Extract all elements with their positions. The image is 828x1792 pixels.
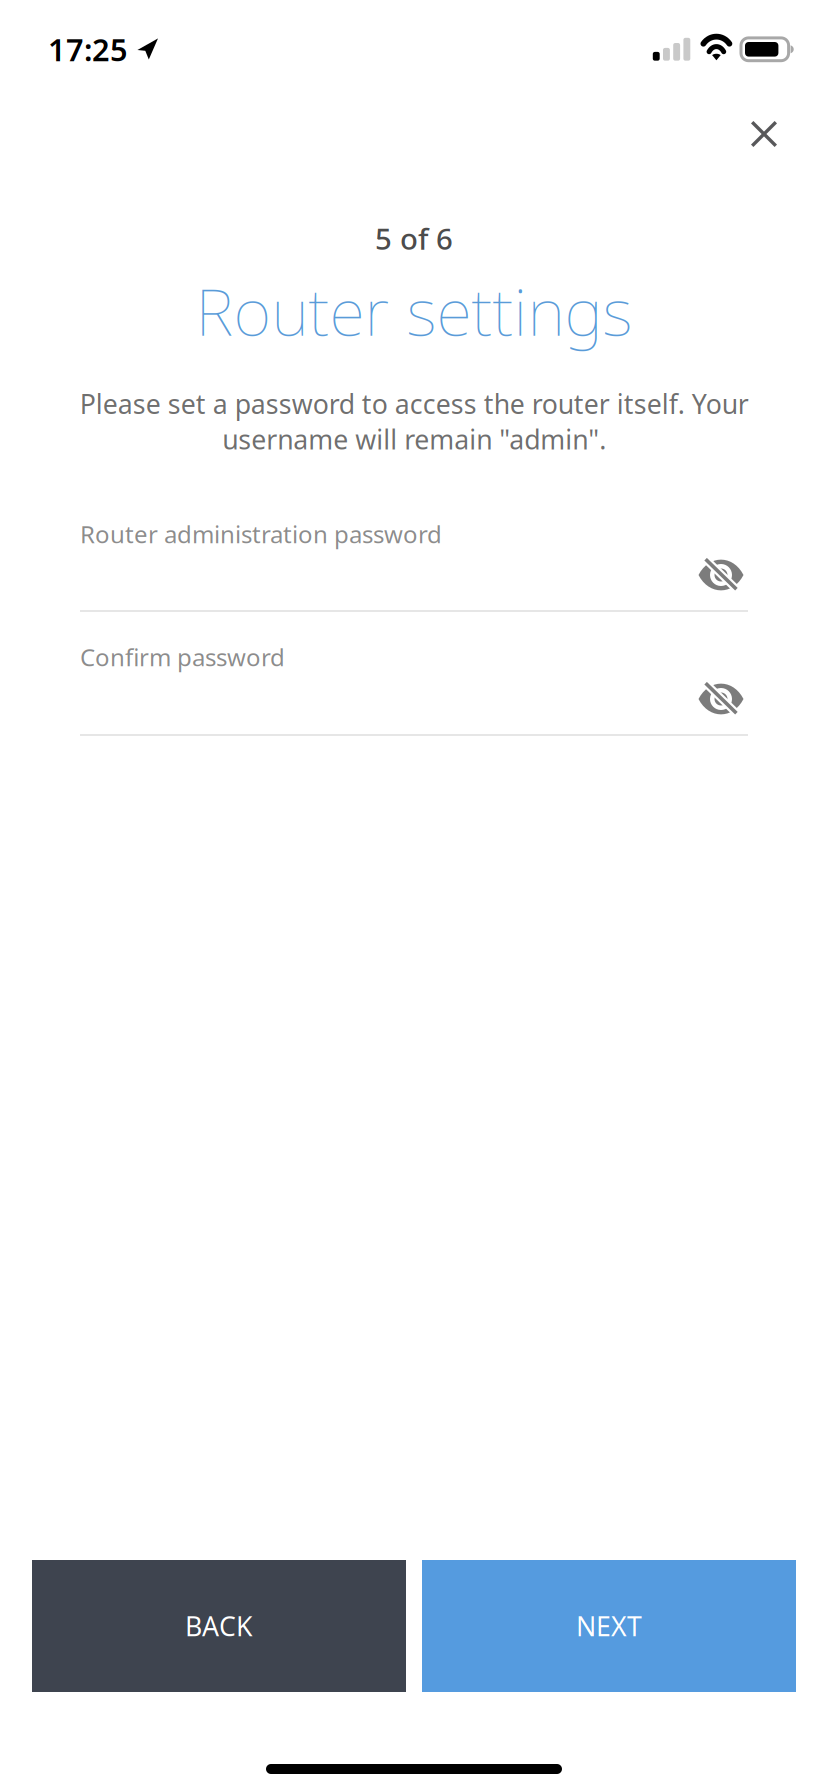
staticText: BACK bbox=[185, 1608, 253, 1644]
button[interactable]: Show router administration password bbox=[679, 544, 763, 606]
button[interactable]: BACK bbox=[32, 1560, 406, 1692]
staticText: 17:25 bbox=[48, 29, 128, 70]
staticText: Router administration password bbox=[80, 518, 442, 550]
button[interactable]: NEXT bbox=[422, 1560, 796, 1692]
staticText: Please set a password to access the rout… bbox=[79, 386, 748, 457]
staticText: NEXT bbox=[576, 1608, 642, 1644]
staticText: 5 of 6 bbox=[375, 219, 453, 258]
staticText: Confirm password bbox=[80, 641, 285, 673]
staticText: Router settings bbox=[195, 267, 632, 354]
button[interactable]: Close bbox=[720, 90, 808, 178]
button[interactable]: Show confirm password bbox=[679, 668, 763, 730]
